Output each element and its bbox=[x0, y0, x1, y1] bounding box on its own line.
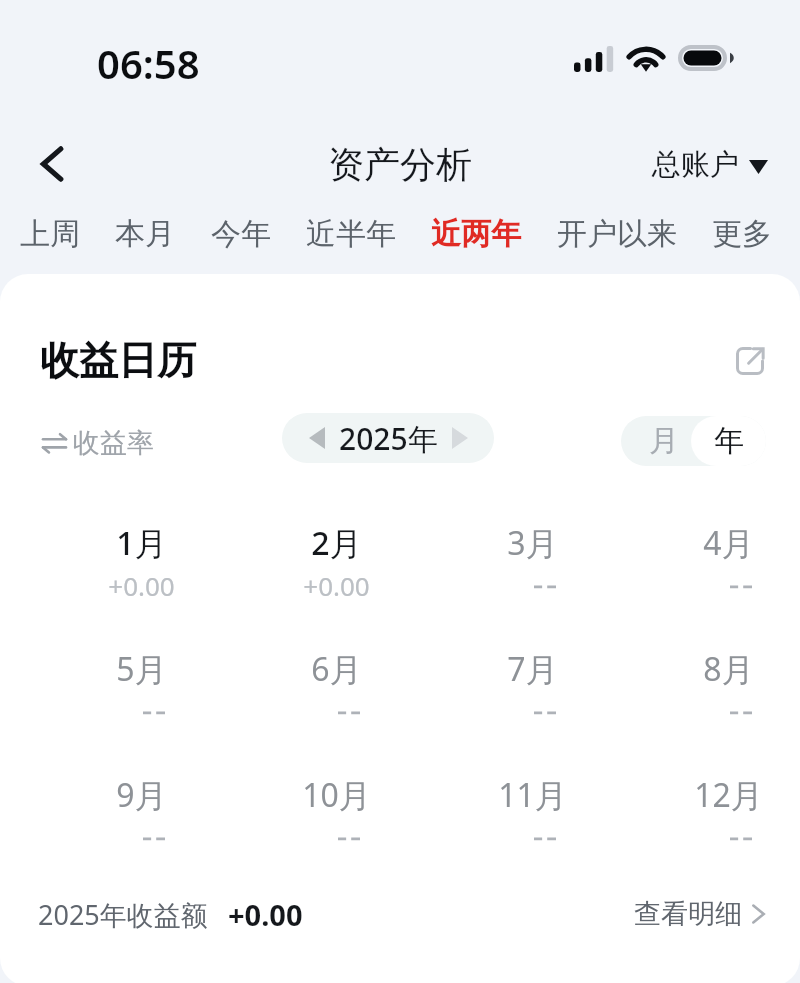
button[interactable]: 开户以来 bbox=[553, 207, 681, 261]
staticText: 上周 bbox=[20, 215, 80, 253]
button[interactable]: Open detail bbox=[725, 336, 775, 386]
button[interactable]: 4月 bbox=[653, 521, 800, 590]
staticText: 总账户 bbox=[652, 146, 739, 183]
button[interactable]: 6月 bbox=[261, 647, 411, 716]
staticText: 10月 bbox=[302, 773, 371, 817]
button[interactable]: 总账户 bbox=[648, 138, 772, 191]
staticText: +0.00 bbox=[228, 895, 303, 934]
staticText: 月 bbox=[649, 422, 679, 460]
button[interactable]: 今年 bbox=[207, 207, 275, 261]
staticText: 今年 bbox=[211, 215, 271, 253]
button[interactable]: 近两年 bbox=[427, 207, 525, 261]
button[interactable]: Back bbox=[22, 128, 82, 200]
staticText: 06:58 bbox=[97, 36, 200, 90]
button[interactable]: 更多 bbox=[708, 207, 776, 261]
staticText: 4月 bbox=[703, 521, 754, 565]
button[interactable]: 9月 bbox=[66, 773, 216, 842]
staticText: 8月 bbox=[703, 647, 754, 691]
staticText: 1月 bbox=[116, 521, 167, 565]
staticText: 收益日历 bbox=[40, 336, 196, 385]
staticText: 查看明细 bbox=[634, 897, 742, 931]
staticText: 更多 bbox=[712, 215, 772, 253]
button[interactable]: Previous year bbox=[295, 413, 339, 463]
staticText: 年 bbox=[714, 422, 744, 460]
staticText: 近两年 bbox=[431, 215, 521, 253]
button[interactable]: 12月 bbox=[653, 773, 800, 842]
staticText: 资产分析 bbox=[328, 142, 472, 187]
staticText: +0.00 bbox=[108, 568, 175, 603]
staticText: 7月 bbox=[507, 647, 558, 691]
button[interactable]: 11月 bbox=[457, 773, 607, 842]
staticText: 本月 bbox=[115, 215, 175, 253]
button[interactable]: 上周 bbox=[16, 207, 84, 261]
button[interactable]: 5月 bbox=[66, 647, 216, 716]
staticText: 开户以来 bbox=[557, 215, 677, 253]
staticText: +0.00 bbox=[303, 568, 370, 603]
button[interactable]: 本月 bbox=[111, 207, 179, 261]
button[interactable]: 月 bbox=[621, 416, 691, 466]
staticText: 2月 bbox=[311, 521, 362, 565]
button[interactable]: 2月 bbox=[261, 521, 411, 603]
button[interactable]: 年 bbox=[691, 416, 766, 466]
button[interactable]: 收益率 bbox=[37, 420, 160, 466]
staticText: 2025年收益额 bbox=[38, 896, 208, 933]
staticText: 5月 bbox=[116, 647, 167, 691]
button[interactable]: 3月 bbox=[457, 521, 607, 590]
staticText: 9月 bbox=[116, 773, 167, 817]
staticText: 近半年 bbox=[306, 215, 396, 253]
button[interactable]: 2025年 bbox=[339, 418, 438, 459]
button[interactable]: 查看明细 bbox=[628, 891, 767, 937]
button[interactable]: 1月 bbox=[66, 521, 216, 603]
staticText: 12月 bbox=[694, 773, 763, 817]
button[interactable]: Next year bbox=[438, 413, 482, 463]
button[interactable]: 10月 bbox=[261, 773, 411, 842]
button[interactable]: 7月 bbox=[457, 647, 607, 716]
staticText: 3月 bbox=[507, 521, 558, 565]
button[interactable]: 近半年 bbox=[302, 207, 400, 261]
staticText: 11月 bbox=[498, 773, 567, 817]
staticText: 2025年 bbox=[339, 418, 438, 459]
button[interactable]: 8月 bbox=[653, 647, 800, 716]
staticText: 收益率 bbox=[73, 426, 154, 460]
staticText: 6月 bbox=[311, 647, 362, 691]
